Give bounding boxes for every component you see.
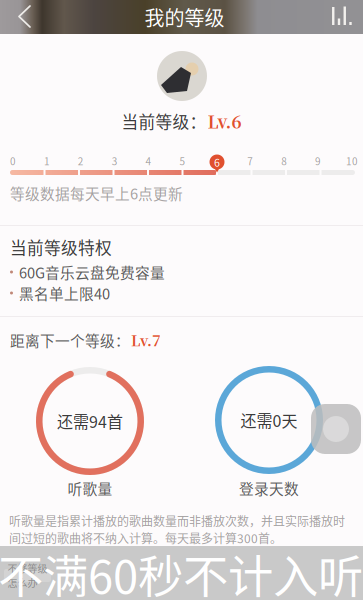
button[interactable]: Now Playing	[332, 0, 363, 34]
staticText: 等级数据每天早上6点更新	[10, 182, 183, 204]
staticText: 我的等级	[144, 2, 224, 31]
staticText: 60G音乐云盘免费容量	[19, 261, 165, 283]
staticText: 距离下一个等级：	[10, 329, 130, 351]
staticText: 10	[346, 154, 358, 168]
staticText: 6	[214, 154, 220, 170]
staticText: 不满60秒不计入听	[0, 541, 363, 600]
staticText: 1	[44, 154, 50, 168]
staticText: Lv.6	[207, 108, 241, 133]
staticText: 0	[10, 154, 16, 168]
staticText: 黑名单上限40	[19, 282, 110, 304]
staticText: 听歌量是指累计播放的歌曲数量而非播放次数，并且实际播放时间过短的歌曲将不纳入计算…	[9, 512, 345, 547]
staticText: 还需0天	[240, 408, 297, 432]
staticText: 6	[213, 154, 219, 168]
staticText: 4	[146, 154, 152, 168]
staticText: 不够等级怎么办	[7, 561, 47, 590]
staticText: 7	[247, 154, 253, 168]
button[interactable]: 不够等级怎么办	[4, 569, 51, 582]
button[interactable]: Back	[0, 0, 37, 34]
staticText: 听歌量	[67, 477, 112, 499]
staticText: 5	[179, 154, 185, 168]
button[interactable]: Assistive Touch	[311, 404, 361, 454]
staticText: Lv.7	[131, 329, 161, 351]
staticText: 9	[315, 154, 321, 168]
staticText: 8	[281, 154, 287, 168]
staticText: 当前等级特权	[10, 235, 112, 259]
staticText: 当前等级：	[121, 109, 206, 133]
staticText: 还需94首	[57, 409, 123, 433]
staticText: 2	[78, 154, 84, 168]
staticText: 登录天数	[239, 477, 299, 499]
staticText: 3	[112, 154, 118, 168]
